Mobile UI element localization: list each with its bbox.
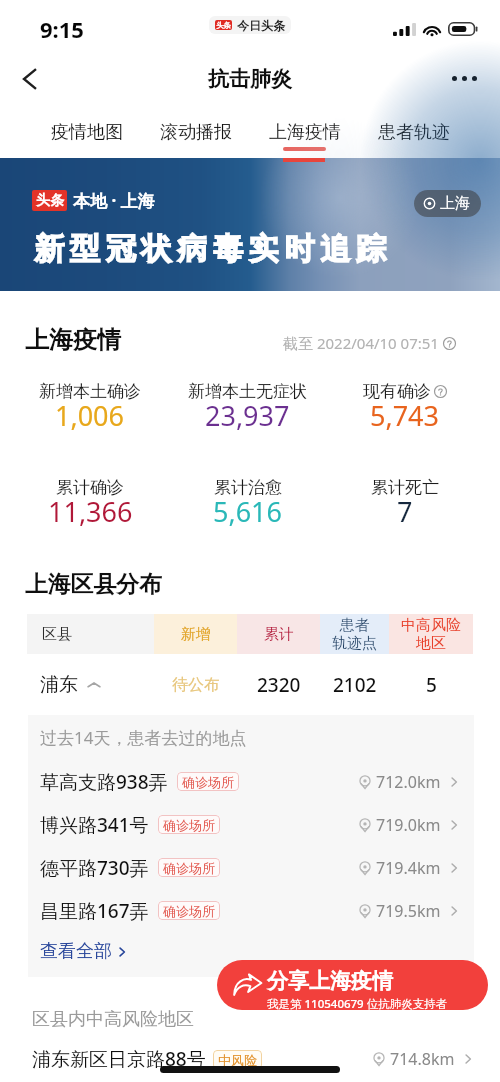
staticText: 累计死亡 <box>371 477 439 498</box>
button[interactable]: 累计治愈 <box>169 477 326 535</box>
staticText: 确诊场所 <box>182 774 234 790</box>
button[interactable]: 查看全部 <box>40 940 128 963</box>
staticText: 确诊场所 <box>163 817 215 833</box>
staticText: 新增 <box>181 625 211 644</box>
staticText: 中高风险 地区 <box>401 616 461 652</box>
staticText: 浦东新区日京路88号 <box>32 1046 206 1072</box>
staticText: 患者轨迹 <box>378 121 450 144</box>
staticText: 昌里路167弄 <box>40 898 149 924</box>
button[interactable]: 新增本土确诊 <box>11 381 169 439</box>
staticText: 9:15 <box>40 14 84 44</box>
staticText: 23,937 <box>205 397 290 434</box>
staticText: 5,616 <box>213 493 283 530</box>
staticText: 累计确诊 <box>56 477 124 498</box>
staticText: 719.4km <box>376 857 441 879</box>
staticText: 患者 轨迹点 <box>332 616 377 652</box>
button[interactable]: 累计死亡 <box>326 477 483 535</box>
button[interactable]: More options <box>447 52 500 105</box>
staticText: 上海区县分布 <box>25 570 162 599</box>
staticText: 2320 <box>257 672 301 698</box>
button[interactable]: 新增本土无症状 <box>169 381 326 439</box>
staticText: 1,006 <box>55 397 125 434</box>
staticText: 上海 <box>440 194 470 213</box>
staticText: 区县 <box>42 625 72 644</box>
staticText: 累计治愈 <box>214 477 282 498</box>
button[interactable]: 浦东新区日京路88号 <box>32 1046 474 1072</box>
staticText: 中风险 <box>218 1052 257 1068</box>
staticText: 新增本土无症状 <box>188 381 307 402</box>
staticText: 11,366 <box>48 493 133 530</box>
button[interactable]: 滚动播报 <box>141 105 250 158</box>
staticText: 新增本土确诊 <box>39 381 141 402</box>
staticText: 查看全部 <box>40 940 112 963</box>
staticText: 719.5km <box>376 900 441 922</box>
staticText: 上海疫情 <box>269 121 341 144</box>
button[interactable]: 上海 <box>414 190 481 217</box>
button[interactable]: 累计确诊 <box>11 477 169 535</box>
button[interactable]: 上海疫情 <box>250 105 359 158</box>
button[interactable]: 博兴路341号 <box>40 803 460 846</box>
button[interactable]: 疫情地图 <box>32 105 141 158</box>
button[interactable]: 昌里路167弄 <box>40 889 460 932</box>
staticText: 分享上海疫情 <box>267 968 393 994</box>
staticText: 5 <box>426 672 437 698</box>
staticText: 滚动播报 <box>160 121 232 144</box>
staticText: 疫情地图 <box>51 121 123 144</box>
button[interactable]: 患者轨迹 <box>359 105 468 158</box>
staticText: 德平路730弄 <box>40 855 149 881</box>
staticText: 2102 <box>333 672 377 698</box>
button[interactable]: 浦东 <box>27 654 473 715</box>
staticText: 714.8km <box>390 1048 455 1070</box>
staticText: 头条 <box>216 21 231 30</box>
staticText: 浦东 <box>40 673 78 697</box>
button[interactable]: 头条 <box>0 158 500 291</box>
button[interactable]: 现有确诊 <box>326 381 483 439</box>
staticText: 抗击肺炎 <box>208 66 292 92</box>
staticText: 现有确诊 <box>363 381 431 402</box>
staticText: 过去14天，患者去过的地点 <box>40 726 247 749</box>
staticText: 712.0km <box>376 771 441 793</box>
staticText: 我是第 110540679 位抗肺炎支持者 <box>267 996 448 1010</box>
button[interactable]: 分享上海疫情 <box>217 960 488 1010</box>
button[interactable]: 草高支路938弄 <box>40 760 460 803</box>
staticText: 头条 <box>36 192 64 210</box>
staticText: 截至 2022/04/10 07:51 <box>283 333 439 353</box>
staticText: 7 <box>397 493 413 530</box>
staticText: 区县内中高风险地区 <box>32 1008 194 1031</box>
staticText: 5,743 <box>370 397 440 434</box>
staticText: 今日头条 <box>237 18 285 33</box>
staticText: 待公布 <box>172 675 220 695</box>
staticText: 确诊场所 <box>163 860 215 876</box>
button[interactable]: Back <box>0 52 60 105</box>
staticText: 本地 · 上海 <box>73 189 155 212</box>
staticText: 上海疫情 <box>25 325 121 355</box>
staticText: 草高支路938弄 <box>40 769 168 795</box>
staticText: 博兴路341号 <box>40 812 149 838</box>
staticText: 累计 <box>264 625 294 644</box>
staticText: 确诊场所 <box>163 903 215 919</box>
staticText: 新型冠状病毒实时追踪 <box>31 230 389 268</box>
staticText: 719.0km <box>376 814 441 836</box>
button[interactable]: 德平路730弄 <box>40 846 460 889</box>
